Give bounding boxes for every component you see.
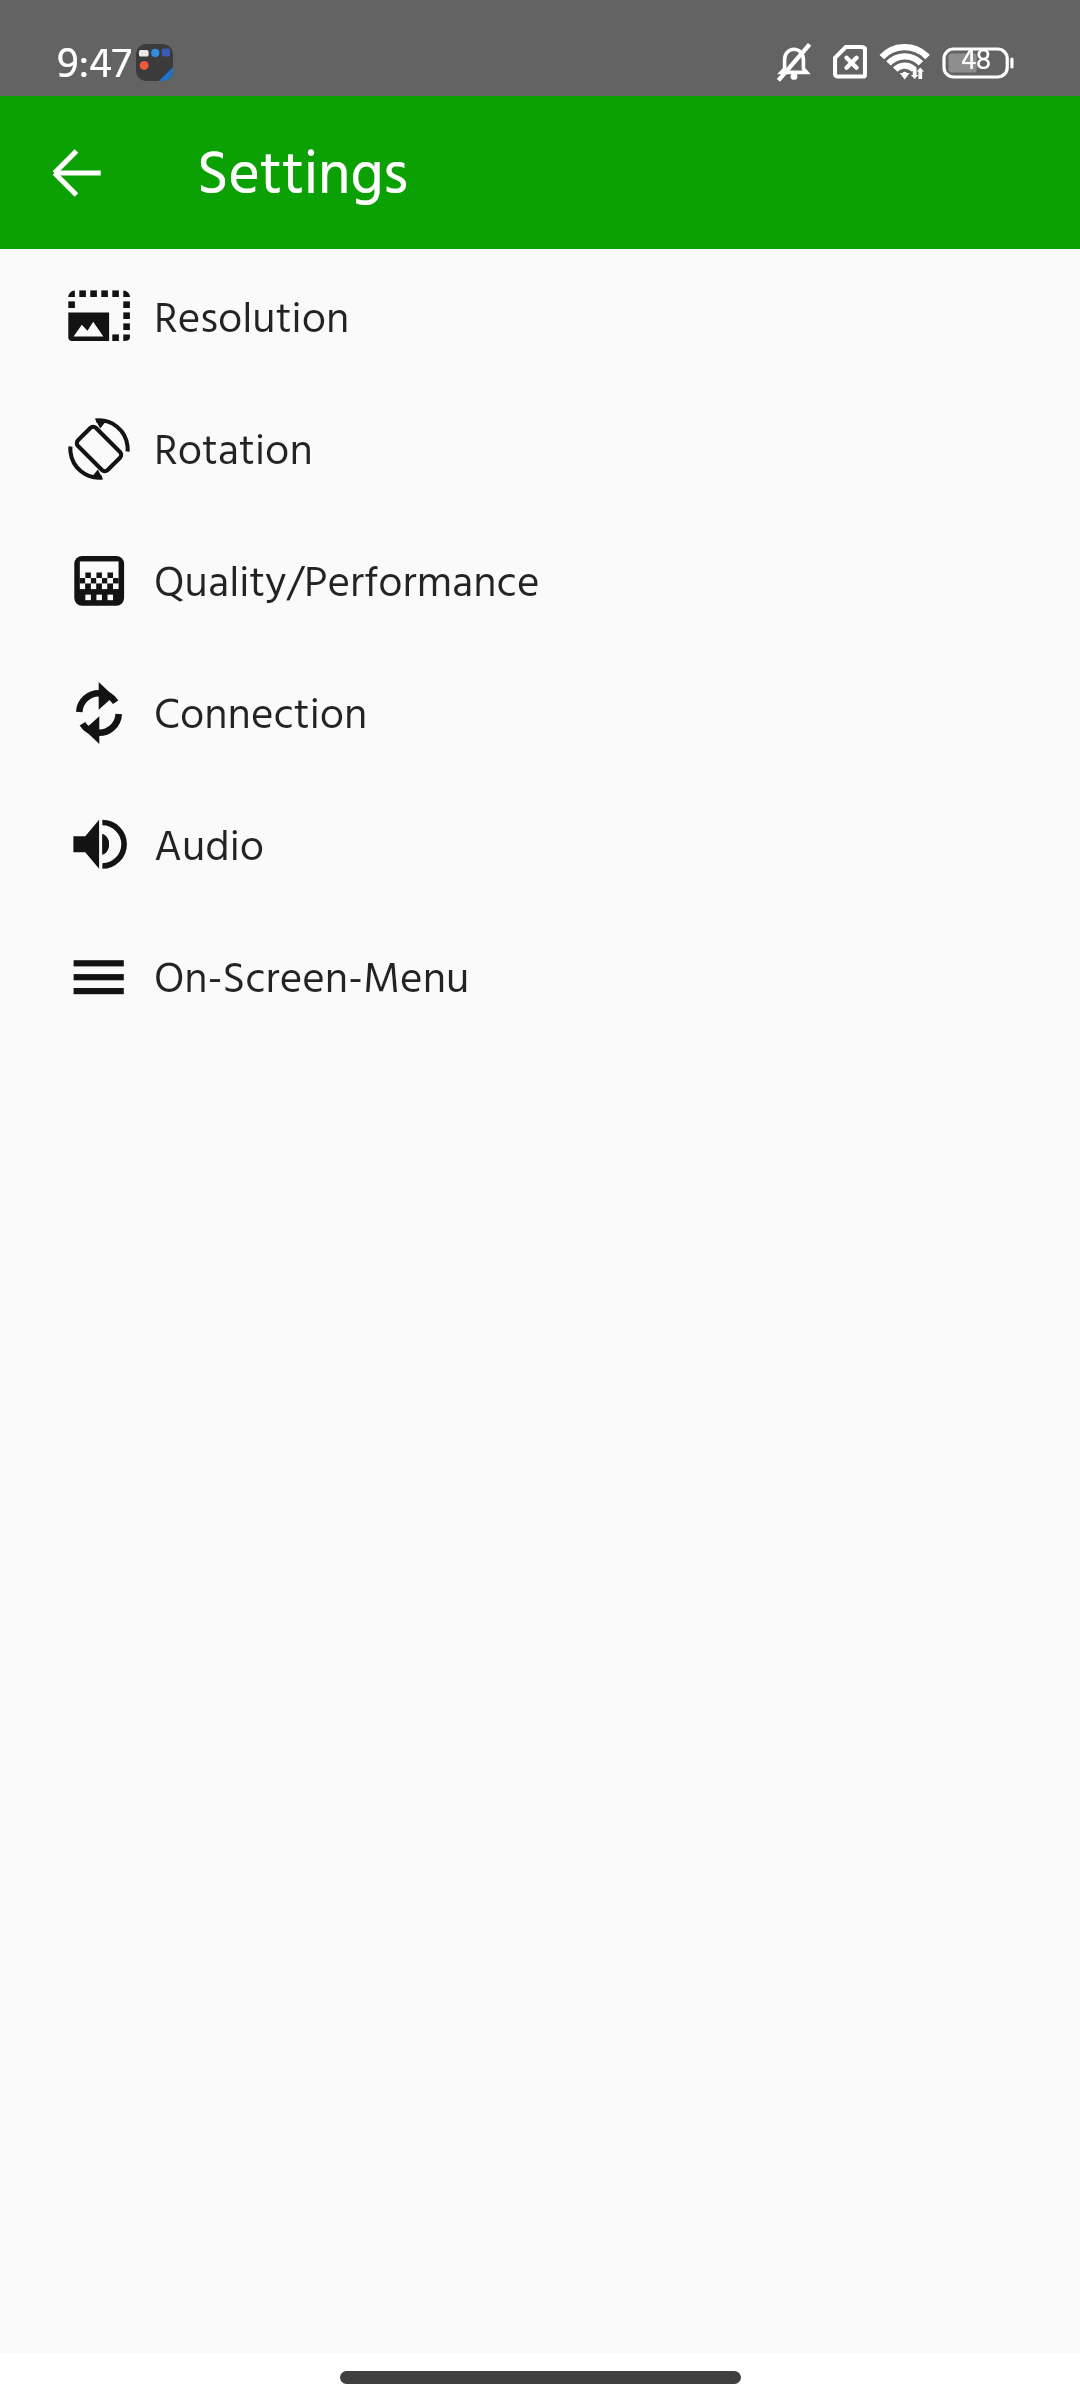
staticText: 48 <box>961 39 992 84</box>
button[interactable]: Audio <box>0 779 1080 911</box>
staticText: Rotation <box>154 418 313 487</box>
staticText: Settings <box>197 130 409 226</box>
button[interactable]: Rotation <box>0 383 1080 515</box>
staticText: Quality/Performance <box>154 550 540 619</box>
button[interactable]: Back <box>26 121 130 225</box>
staticText: Audio <box>154 814 265 883</box>
button[interactable]: On-Screen-Menu <box>0 911 1080 1043</box>
button[interactable]: Connection <box>0 647 1080 779</box>
button[interactable]: Quality/Performance <box>0 515 1080 647</box>
staticText: Connection <box>154 682 368 751</box>
staticText: Resolution <box>154 286 350 355</box>
staticText: 9:47 <box>57 32 132 101</box>
button[interactable]: Resolution <box>0 251 1080 383</box>
staticText: On-Screen-Menu <box>154 946 470 1015</box>
